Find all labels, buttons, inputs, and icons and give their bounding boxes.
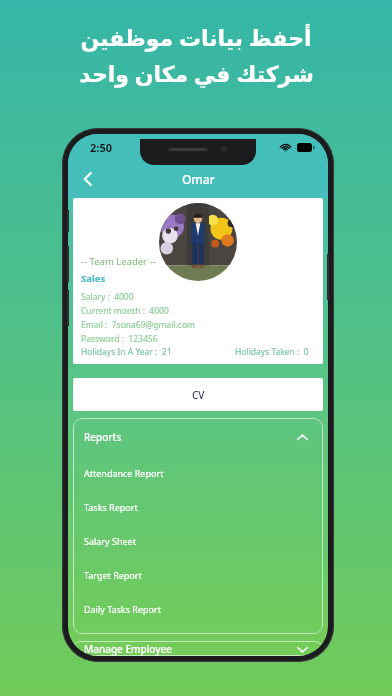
staticText: Holidays Taken : 0 [235,346,309,358]
button[interactable]: Daily Tasks Report [73,592,323,626]
staticText: Salary : 4000 [81,291,134,303]
staticText: -- Team Leader -- [81,255,156,268]
button[interactable]: Tasks Report [73,490,323,524]
staticText: Current month : 4000 [81,305,169,317]
staticText: Holidays In A Year : 21 [81,346,172,358]
staticText: شركتك في مكان واحد [79,58,314,88]
button[interactable]: Salary Sheet [73,524,323,558]
button[interactable]: Reports [73,418,323,456]
staticText: Salary Sheet [84,535,136,547]
staticText: Omar [182,171,215,187]
button[interactable]: Manage Employee [73,641,323,656]
button[interactable]: Back [72,163,104,195]
staticText: Manage Employee [84,642,173,656]
staticText: Tasks Report [84,501,138,513]
button[interactable]: CV [73,378,323,411]
staticText: Target Report [84,569,142,581]
staticText: أحفظ بيانات موظفين [80,22,312,52]
staticText: Password : 123456 [81,333,158,345]
staticText: Reports [84,430,122,444]
button[interactable]: Target Report [73,558,323,592]
staticText: CV [192,388,205,402]
staticText: Sales [81,272,106,285]
staticText: Daily Tasks Report [84,603,161,615]
staticText: Attendance Report [84,467,164,479]
staticText: 2:50 [90,140,112,155]
button[interactable]: -- Team Leader -- [73,198,323,364]
staticText: Email : 7sona69@gmail.com [81,319,195,331]
button[interactable]: Attendance Report [73,456,323,490]
